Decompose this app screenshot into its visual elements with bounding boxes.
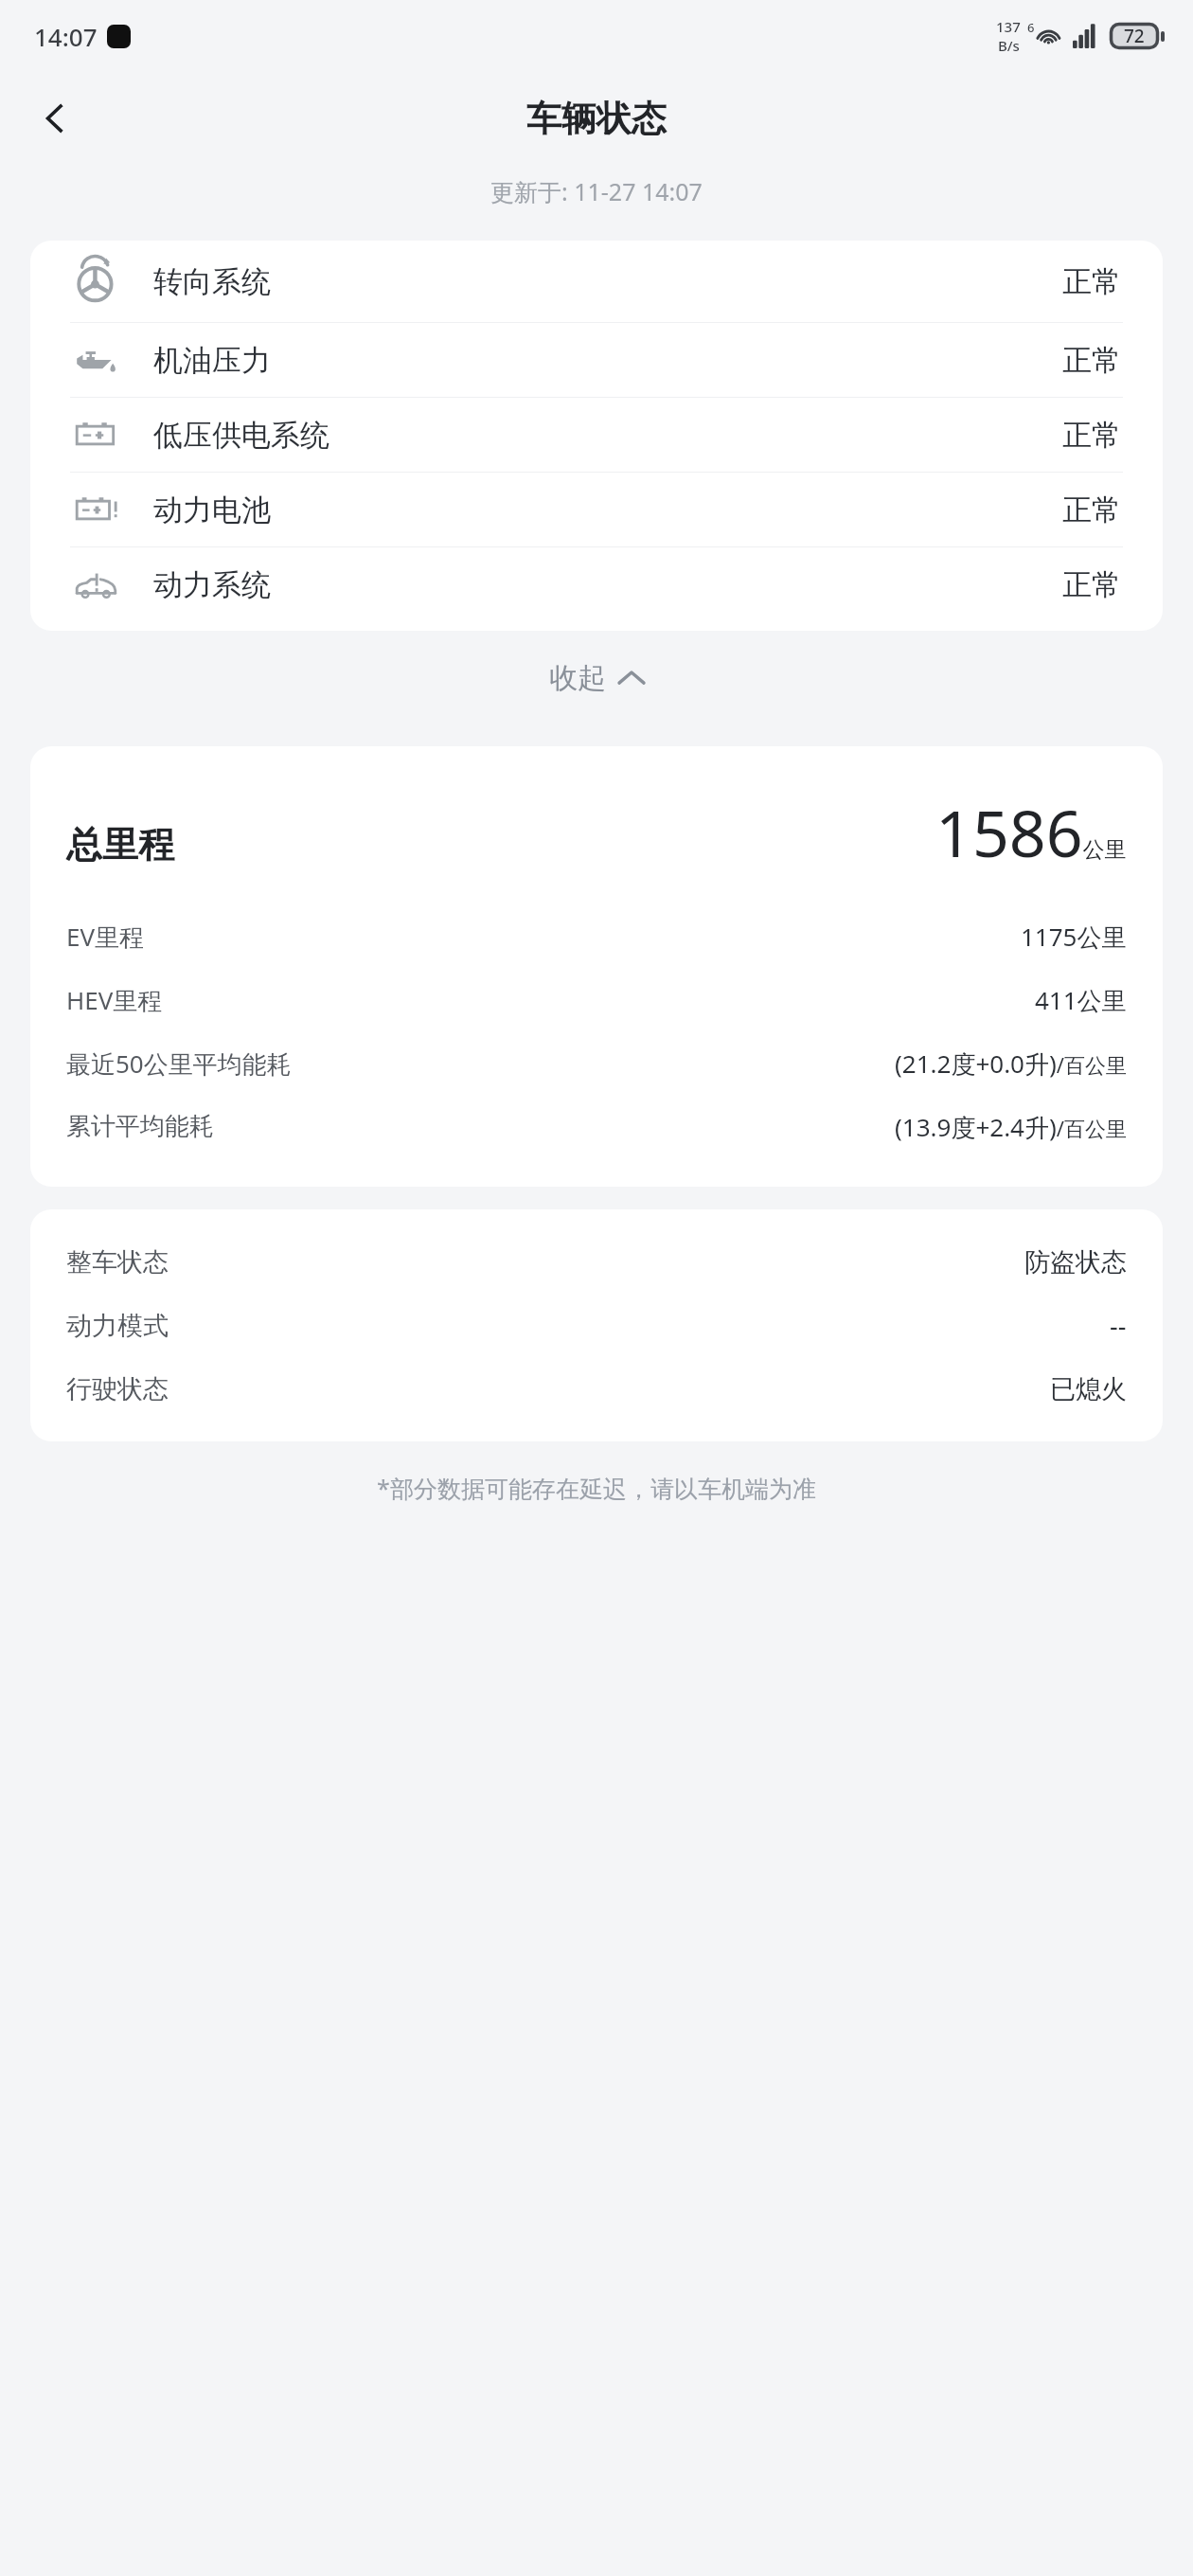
staticText: 收起 — [549, 660, 606, 696]
button[interactable]: 动力模式 — [66, 1294, 1127, 1357]
button[interactable]: 行驶状态 — [66, 1357, 1127, 1421]
button[interactable]: HEV里程 — [66, 968, 1127, 1031]
button[interactable]: 低压供电系统 — [30, 398, 1163, 472]
staticText: HEV里程 — [66, 983, 163, 1017]
staticText: 正常 — [1062, 566, 1121, 603]
button[interactable]: 转向系统 — [30, 241, 1163, 322]
staticText: 1175公里 — [1021, 920, 1127, 954]
staticText: EV里程 — [66, 920, 145, 954]
staticText: 防盗状态 — [1024, 1246, 1127, 1279]
staticText: 411公里 — [1035, 983, 1127, 1017]
button[interactable]: 收起 — [526, 649, 667, 707]
staticText: *部分数据可能存在延迟，请以车机端为准 — [377, 1472, 816, 1504]
staticText: 正常 — [1062, 417, 1121, 454]
staticText: 已熄火 — [1050, 1373, 1127, 1405]
staticText: 正常 — [1062, 492, 1121, 528]
staticText: 转向系统 — [153, 263, 271, 300]
staticText: 14:07 — [34, 20, 98, 53]
staticText: 累计平均能耗 — [66, 1111, 214, 1142]
staticText: -- — [1110, 1308, 1127, 1343]
staticText: 正常 — [1062, 342, 1121, 379]
staticText: B/s — [998, 36, 1020, 55]
staticText: 整车状态 — [66, 1246, 169, 1279]
staticText: 低压供电系统 — [153, 417, 329, 454]
button[interactable]: 动力电池 — [30, 473, 1163, 546]
staticText: 72 — [1124, 24, 1145, 48]
button[interactable]: 累计平均能耗 — [66, 1095, 1127, 1158]
staticText: 动力系统 — [153, 566, 271, 603]
staticText: 正常 — [1062, 263, 1121, 300]
staticText: 6 — [1027, 19, 1035, 36]
staticText: 动力模式 — [66, 1310, 169, 1342]
button[interactable]: Back — [21, 84, 89, 152]
staticText: (13.9度+2.4升)/百公里 — [895, 1110, 1127, 1144]
button[interactable]: 动力系统 — [30, 547, 1163, 621]
button[interactable]: 机油压力 — [30, 323, 1163, 397]
staticText: (21.2度+0.0升)/百公里 — [895, 1046, 1127, 1081]
staticText: 行驶状态 — [66, 1373, 169, 1405]
staticText: 最近50公里平均能耗 — [66, 1046, 292, 1081]
staticText: 动力电池 — [153, 492, 271, 528]
staticText: 更新于: 11-27 14:07 — [490, 175, 703, 207]
staticText: 137 — [996, 17, 1021, 36]
staticText: 1586公里 — [935, 788, 1127, 876]
staticText: 机油压力 — [153, 342, 271, 379]
button[interactable]: EV里程 — [66, 904, 1127, 968]
staticText: 总里程 — [66, 822, 174, 868]
staticText: 车辆状态 — [526, 97, 667, 141]
button[interactable]: 最近50公里平均能耗 — [66, 1031, 1127, 1095]
button[interactable]: 整车状态 — [66, 1230, 1127, 1294]
